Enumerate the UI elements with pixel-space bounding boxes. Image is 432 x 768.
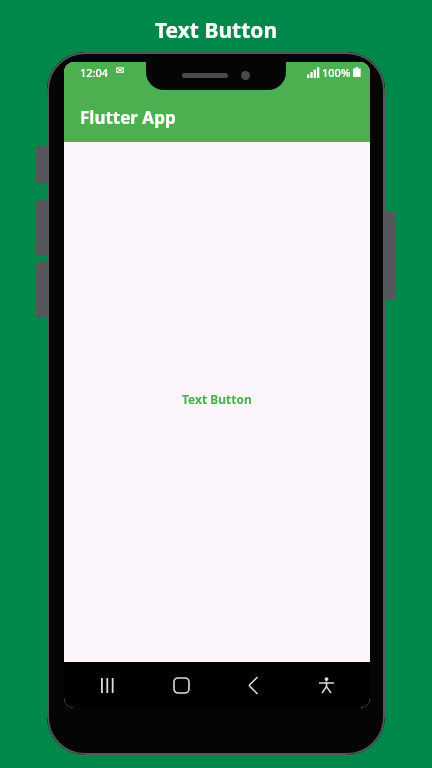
- staticText: 12:04: [80, 65, 109, 80]
- button[interactable]: Back: [233, 665, 273, 705]
- staticText: Text Button: [0, 16, 432, 45]
- staticText: 100%: [322, 65, 351, 80]
- button[interactable]: Accessibility: [306, 665, 346, 705]
- button[interactable]: Home: [161, 665, 201, 705]
- staticText: Flutter App: [80, 106, 176, 129]
- staticText: ✉: [116, 65, 125, 77]
- button[interactable]: Text Button: [174, 387, 260, 411]
- staticText: Text Button: [182, 391, 252, 407]
- button[interactable]: Recent apps: [88, 665, 128, 705]
